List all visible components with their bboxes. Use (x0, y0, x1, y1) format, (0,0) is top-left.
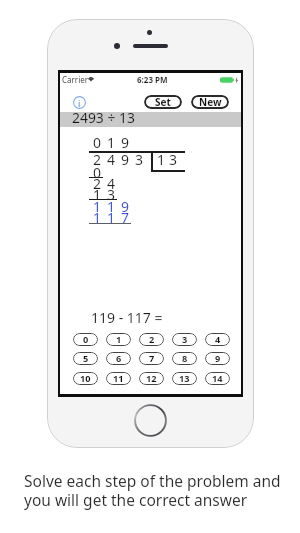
staticText: 1 (107, 208, 116, 225)
staticText: 3 (135, 150, 144, 167)
staticText: 12 (146, 372, 157, 385)
staticText: 6 (116, 352, 122, 365)
staticText: 8 (182, 352, 188, 365)
staticText: 2 (149, 333, 155, 346)
button[interactable]: New (191, 95, 229, 109)
staticText: 6:23 PM (137, 74, 168, 85)
staticText: 9 (121, 197, 130, 214)
button[interactable]: 0 (73, 333, 98, 346)
button[interactable]: 1 (106, 333, 131, 346)
staticText: 3 (107, 185, 116, 202)
staticText: 1 (93, 208, 102, 225)
button[interactable]: 9 (205, 352, 230, 365)
staticText: New (199, 95, 222, 109)
staticText: 3 (169, 150, 178, 167)
staticText: 5 (83, 352, 89, 365)
staticText: 2493 ÷ 13 (72, 108, 135, 127)
button[interactable]: 11 (106, 372, 131, 385)
button[interactable]: Info (73, 96, 86, 109)
staticText: Set (155, 95, 171, 109)
staticText: 10 (80, 372, 91, 385)
button[interactable]: Set (144, 95, 182, 109)
staticText: 4 (107, 150, 116, 167)
staticText: 119 - 117 = (91, 308, 163, 327)
button[interactable]: 10 (73, 372, 98, 385)
staticText: 0 (93, 133, 102, 150)
staticText: 2 (93, 150, 102, 167)
staticText: you will get the correct answer (24, 489, 248, 510)
staticText: 1 (107, 197, 116, 214)
staticText: 1 (93, 197, 102, 214)
staticText: 3 (182, 333, 188, 346)
button[interactable]: 5 (73, 352, 98, 365)
button[interactable]: 7 (139, 352, 164, 365)
button[interactable]: 13 (172, 372, 197, 385)
staticText: 4 (215, 333, 221, 346)
button[interactable]: 14 (205, 372, 230, 385)
staticText: 1 (157, 150, 166, 167)
staticText: 1 (93, 185, 102, 202)
button[interactable]: 12 (139, 372, 164, 385)
staticText: 14 (212, 372, 223, 385)
staticText: 4 (107, 174, 116, 191)
staticText: 9 (121, 133, 130, 150)
staticText: 0 (93, 163, 102, 180)
button[interactable]: 8 (172, 352, 197, 365)
button[interactable]: 6 (106, 352, 131, 365)
staticText: 2 (93, 174, 102, 191)
staticText: 9 (121, 150, 130, 167)
staticText: Carrier (62, 74, 89, 85)
staticText: i (78, 97, 81, 109)
staticText: 1 (116, 333, 122, 346)
button[interactable]: 4 (205, 333, 230, 346)
staticText: 13 (179, 372, 190, 385)
staticText: 7 (121, 208, 130, 225)
staticText: 7 (149, 352, 155, 365)
staticText: Solve each step of the problem and (24, 470, 281, 491)
button[interactable]: 2 (139, 333, 164, 346)
staticText: 9 (215, 352, 221, 365)
staticText: 0 (83, 333, 89, 346)
staticText: 11 (113, 372, 124, 385)
button[interactable]: 3 (172, 333, 197, 346)
staticText: 1 (107, 133, 116, 150)
